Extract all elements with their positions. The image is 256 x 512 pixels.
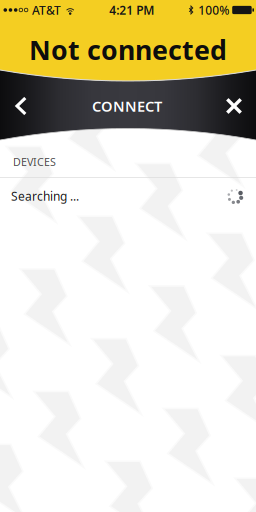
staticText: CONNECT xyxy=(92,96,162,116)
staticText: Searching ... xyxy=(11,188,79,204)
button[interactable]: Close xyxy=(213,85,255,127)
staticText: 4:21 PM xyxy=(109,2,154,18)
staticText: DEVICES xyxy=(13,155,56,169)
button[interactable]: Back xyxy=(1,85,41,127)
staticText: AT&T xyxy=(32,2,61,18)
staticText: 100% xyxy=(198,2,229,18)
button[interactable]: Searching ... xyxy=(0,178,256,215)
staticText: Not connected xyxy=(29,32,227,67)
